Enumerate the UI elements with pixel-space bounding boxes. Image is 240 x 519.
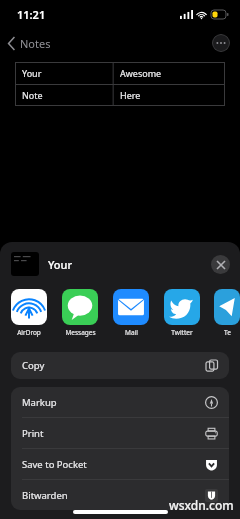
button[interactable]: Save to Pocket	[11, 449, 229, 479]
staticText: Messages	[65, 328, 96, 337]
staticText: Here	[120, 89, 141, 101]
staticText: Your	[48, 257, 73, 272]
staticText: Awesome	[120, 67, 162, 79]
button[interactable]: Markup	[11, 387, 229, 417]
staticText: 11:21	[17, 7, 46, 22]
button[interactable]: Messages	[61, 289, 99, 337]
staticText: AirDrop	[17, 328, 41, 337]
staticText: Te	[224, 328, 231, 337]
button[interactable]: Close	[211, 255, 230, 274]
button[interactable]: More options	[212, 34, 230, 52]
button[interactable]: Notes	[0, 32, 59, 55]
button[interactable]: Print	[11, 418, 229, 448]
button[interactable]: Mail	[112, 289, 150, 337]
staticText: Mail	[125, 328, 138, 337]
staticText: Bitwarden	[22, 489, 68, 502]
staticText: Note	[22, 89, 43, 101]
staticText: Notes	[20, 36, 51, 51]
button[interactable]: Twitter	[163, 289, 201, 337]
staticText: Print	[22, 427, 44, 440]
staticText: Save to Pocket	[22, 458, 87, 471]
button[interactable]: AirDrop	[10, 289, 48, 337]
staticText: Markup	[22, 396, 57, 409]
button[interactable]: Te	[214, 289, 240, 337]
staticText: Your	[22, 67, 42, 79]
button[interactable]: Bitwarden	[11, 480, 229, 510]
button[interactable]: Copy	[11, 352, 229, 379]
staticText: Copy	[22, 359, 45, 372]
staticText: wsxdn.com	[169, 497, 234, 513]
staticText: Twitter	[171, 328, 193, 337]
